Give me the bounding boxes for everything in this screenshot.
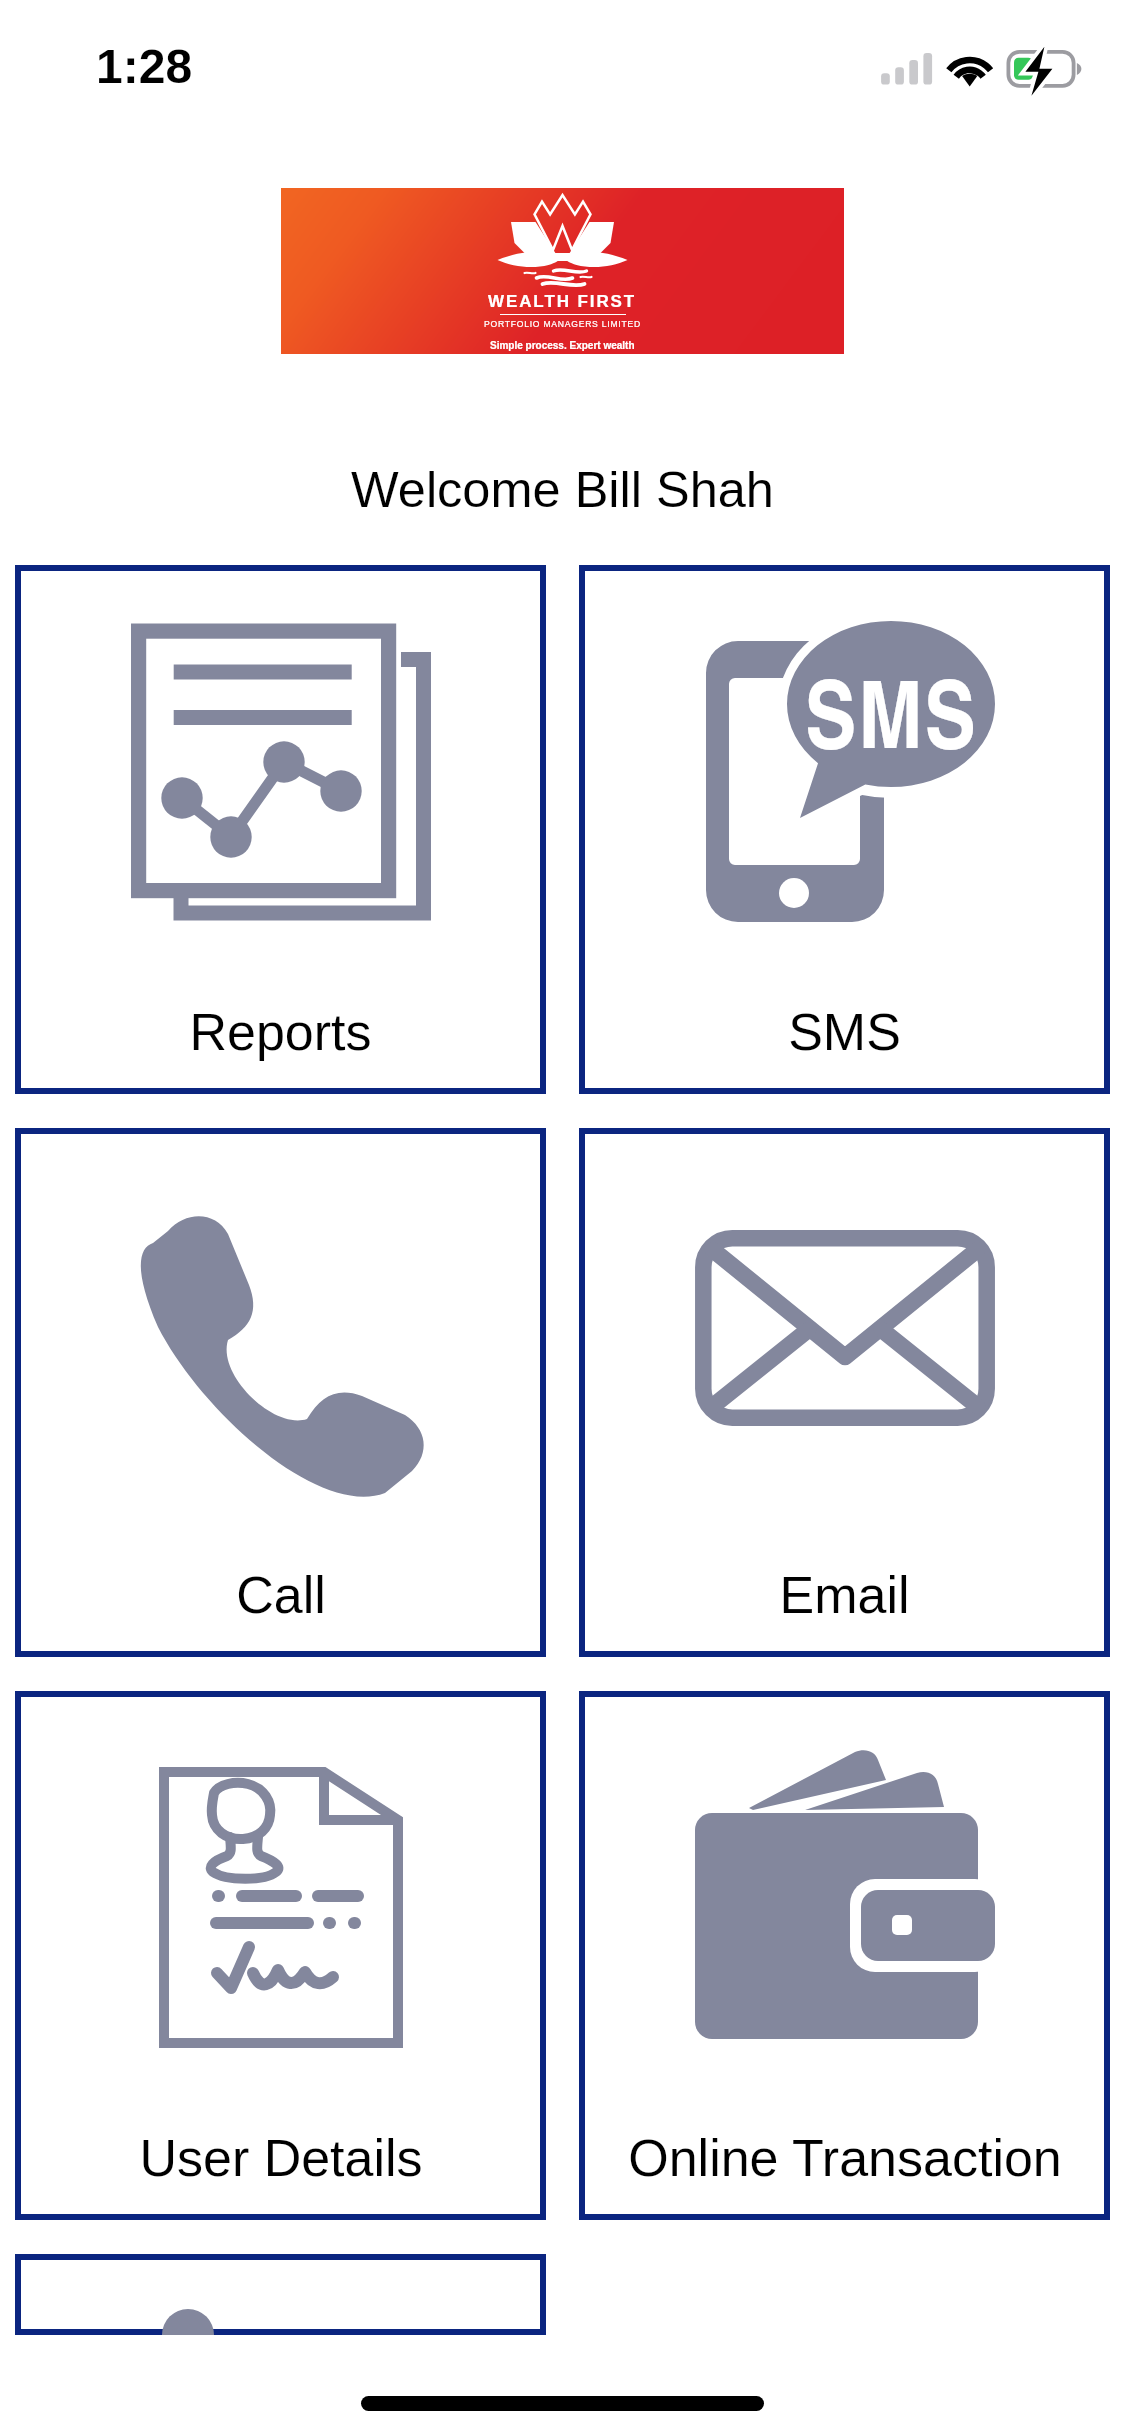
button[interactable]: User Details bbox=[15, 1691, 546, 2220]
staticText: PORTFOLIO MANAGERS LIMITED bbox=[484, 319, 641, 329]
staticText: SMS bbox=[788, 1003, 901, 1061]
button[interactable]: Online Transaction bbox=[579, 1691, 1110, 2220]
staticText: Simple process. Expert wealth bbox=[490, 340, 635, 351]
staticText: User Details bbox=[139, 2129, 423, 2187]
staticText: Call bbox=[236, 1566, 326, 1624]
staticText: Email bbox=[779, 1566, 910, 1624]
staticText: Welcome Bill Shah bbox=[0, 461, 1125, 517]
button[interactable]: Reports bbox=[15, 565, 546, 1094]
staticText: Reports bbox=[189, 1003, 372, 1061]
staticText: WEALTH FIRST bbox=[488, 292, 637, 311]
button[interactable]: Email bbox=[579, 1128, 1110, 1657]
button[interactable]: Call bbox=[15, 1128, 546, 1657]
staticText: 1:28 bbox=[96, 40, 193, 94]
staticText: Online Transaction bbox=[628, 2129, 1062, 2187]
button[interactable]: SMS bbox=[579, 565, 1110, 1094]
button[interactable]: Logout bbox=[15, 2254, 546, 2335]
staticText: SMS bbox=[805, 644, 979, 777]
